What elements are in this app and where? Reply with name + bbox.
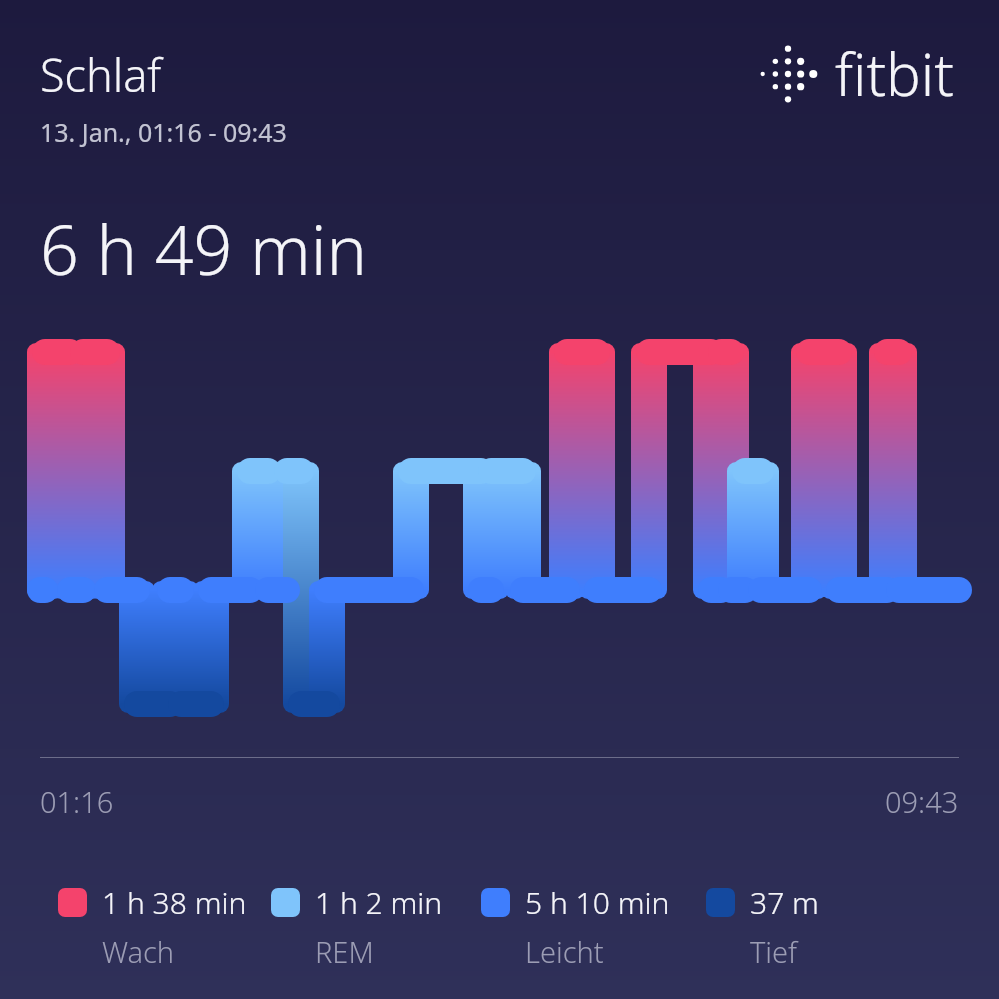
staticText: Leicht [525, 932, 604, 971]
staticText: 37 m [750, 882, 819, 923]
staticText: 1 h 2 min [315, 882, 443, 923]
staticText: 13. Jan., 01:16 - 09:43 [40, 115, 287, 149]
staticText: Tief [750, 932, 798, 971]
button[interactable]: 1 h 2 min [271, 882, 481, 971]
staticText: Schlaf [40, 44, 162, 105]
staticText: 09:43 [885, 782, 959, 821]
button[interactable]: 5 h 10 min [481, 882, 706, 971]
staticText: fitbit [835, 34, 955, 113]
staticText: 6 h 49 min [40, 202, 367, 295]
staticText: REM [315, 932, 374, 971]
staticText: 5 h 10 min [525, 882, 670, 923]
staticText: 01:16 [40, 782, 114, 821]
button[interactable]: 1 h 38 min [58, 882, 271, 971]
staticText: 1 h 38 min [102, 882, 247, 923]
button[interactable]: Fitbit [757, 34, 955, 113]
button[interactable]: Sleep stages chart [0, 0, 999, 999]
button[interactable]: 37 m [706, 882, 886, 971]
staticText: Wach [102, 932, 175, 971]
